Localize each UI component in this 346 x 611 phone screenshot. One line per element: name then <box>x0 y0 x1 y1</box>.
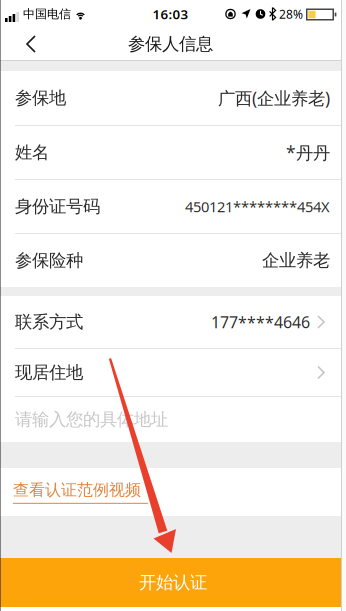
staticText: 查看认证范例视频 <box>13 480 141 500</box>
staticText: 450121********454X <box>185 197 330 216</box>
staticText: 177****4646 <box>211 311 310 333</box>
staticText: 身份证号码 <box>15 196 100 217</box>
staticText: 企业养老 <box>262 250 330 271</box>
button[interactable]: 返回 <box>0 28 60 60</box>
staticText: 开始认证 <box>139 572 207 593</box>
staticText: 28% <box>279 6 303 22</box>
staticText: 参保险种 <box>15 250 83 271</box>
staticText: 姓名 <box>15 142 49 163</box>
staticText: 中国电信 <box>23 7 71 21</box>
button[interactable]: 查看认证范例视频 <box>0 480 148 504</box>
staticText: 参保人信息 <box>128 33 213 55</box>
staticText: 现居住地 <box>15 362 83 383</box>
staticText: 参保地 <box>15 87 66 109</box>
button[interactable]: 现居住地 <box>0 349 346 396</box>
button[interactable]: 联系方式 <box>0 296 346 348</box>
button[interactable]: 开始认证 <box>0 558 346 607</box>
staticText: 广西(企业养老) <box>218 86 330 109</box>
staticText: *丹丹 <box>286 141 330 164</box>
staticText: 16:03 <box>152 5 188 23</box>
staticText: 请输入您的具体地址 <box>15 409 168 430</box>
staticText: 联系方式 <box>15 311 83 333</box>
